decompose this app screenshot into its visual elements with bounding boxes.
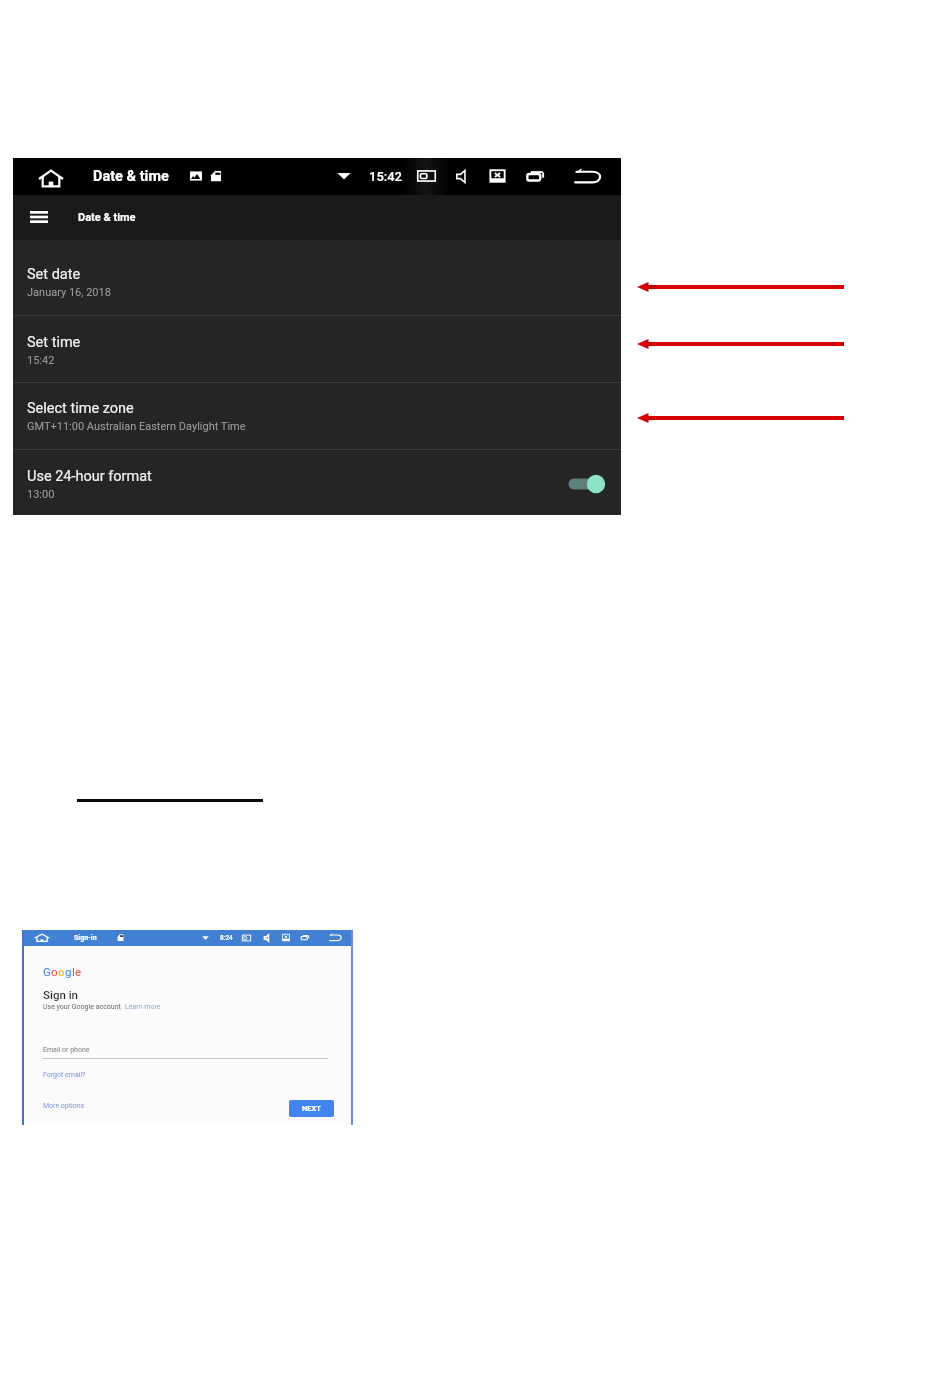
button[interactable]: Forgot email? [43, 1071, 86, 1079]
staticText: Date & time [78, 211, 136, 224]
staticText: 8:24 [220, 934, 233, 942]
staticText: 13:00 [27, 488, 55, 501]
staticText: o [58, 965, 65, 978]
staticText: 15:42 [369, 169, 403, 184]
button[interactable]: Select time zone [13, 383, 621, 449]
staticText: l [72, 965, 75, 978]
button[interactable]: Recents [527, 169, 544, 183]
button[interactable]: More options [43, 1102, 85, 1110]
button[interactable]: Use 24-hour format, on [565, 470, 609, 498]
button[interactable]: Volume [264, 934, 271, 942]
button[interactable]: Set date [13, 240, 621, 315]
button[interactable]: Back [574, 168, 602, 185]
button[interactable]: Close [489, 168, 506, 184]
button[interactable]: NEXT [289, 1100, 334, 1117]
button[interactable]: Date & time [13, 195, 621, 240]
staticText: Use 24-hour format [27, 468, 152, 485]
staticText: e [75, 965, 82, 978]
button[interactable]: Set time [13, 316, 621, 382]
button[interactable]: Use 24-hour format [13, 450, 621, 515]
button[interactable]: Back [329, 933, 342, 942]
button[interactable]: Volume [456, 169, 470, 184]
button[interactable]: Recents [301, 934, 309, 941]
button[interactable]: Learn more [125, 1003, 161, 1011]
staticText: Date & time [93, 168, 169, 185]
staticText: G [43, 965, 51, 978]
staticText: Email or phone [43, 1046, 90, 1054]
staticText: o [51, 965, 58, 978]
staticText: 15:42 [27, 354, 55, 367]
staticText: Set date [27, 266, 81, 283]
button[interactable]: Screenshot [242, 934, 251, 942]
staticText: Sign-in [74, 934, 97, 942]
staticText: Set time [27, 334, 81, 351]
button[interactable]: Close [282, 933, 290, 942]
staticText: Sign in [43, 988, 79, 1001]
staticText: g [65, 965, 72, 978]
button[interactable]: Screenshot [417, 169, 436, 183]
staticText: January 16, 2018 [27, 286, 111, 299]
staticText: Select time zone [27, 400, 134, 417]
button[interactable]: Home [38, 166, 64, 192]
staticText: NEXT [302, 1104, 321, 1113]
staticText: GMT+11:00 Australian Eastern Daylight Ti… [27, 420, 246, 433]
button[interactable]: Home [34, 932, 50, 944]
staticText: Use your Google account [43, 1003, 121, 1011]
